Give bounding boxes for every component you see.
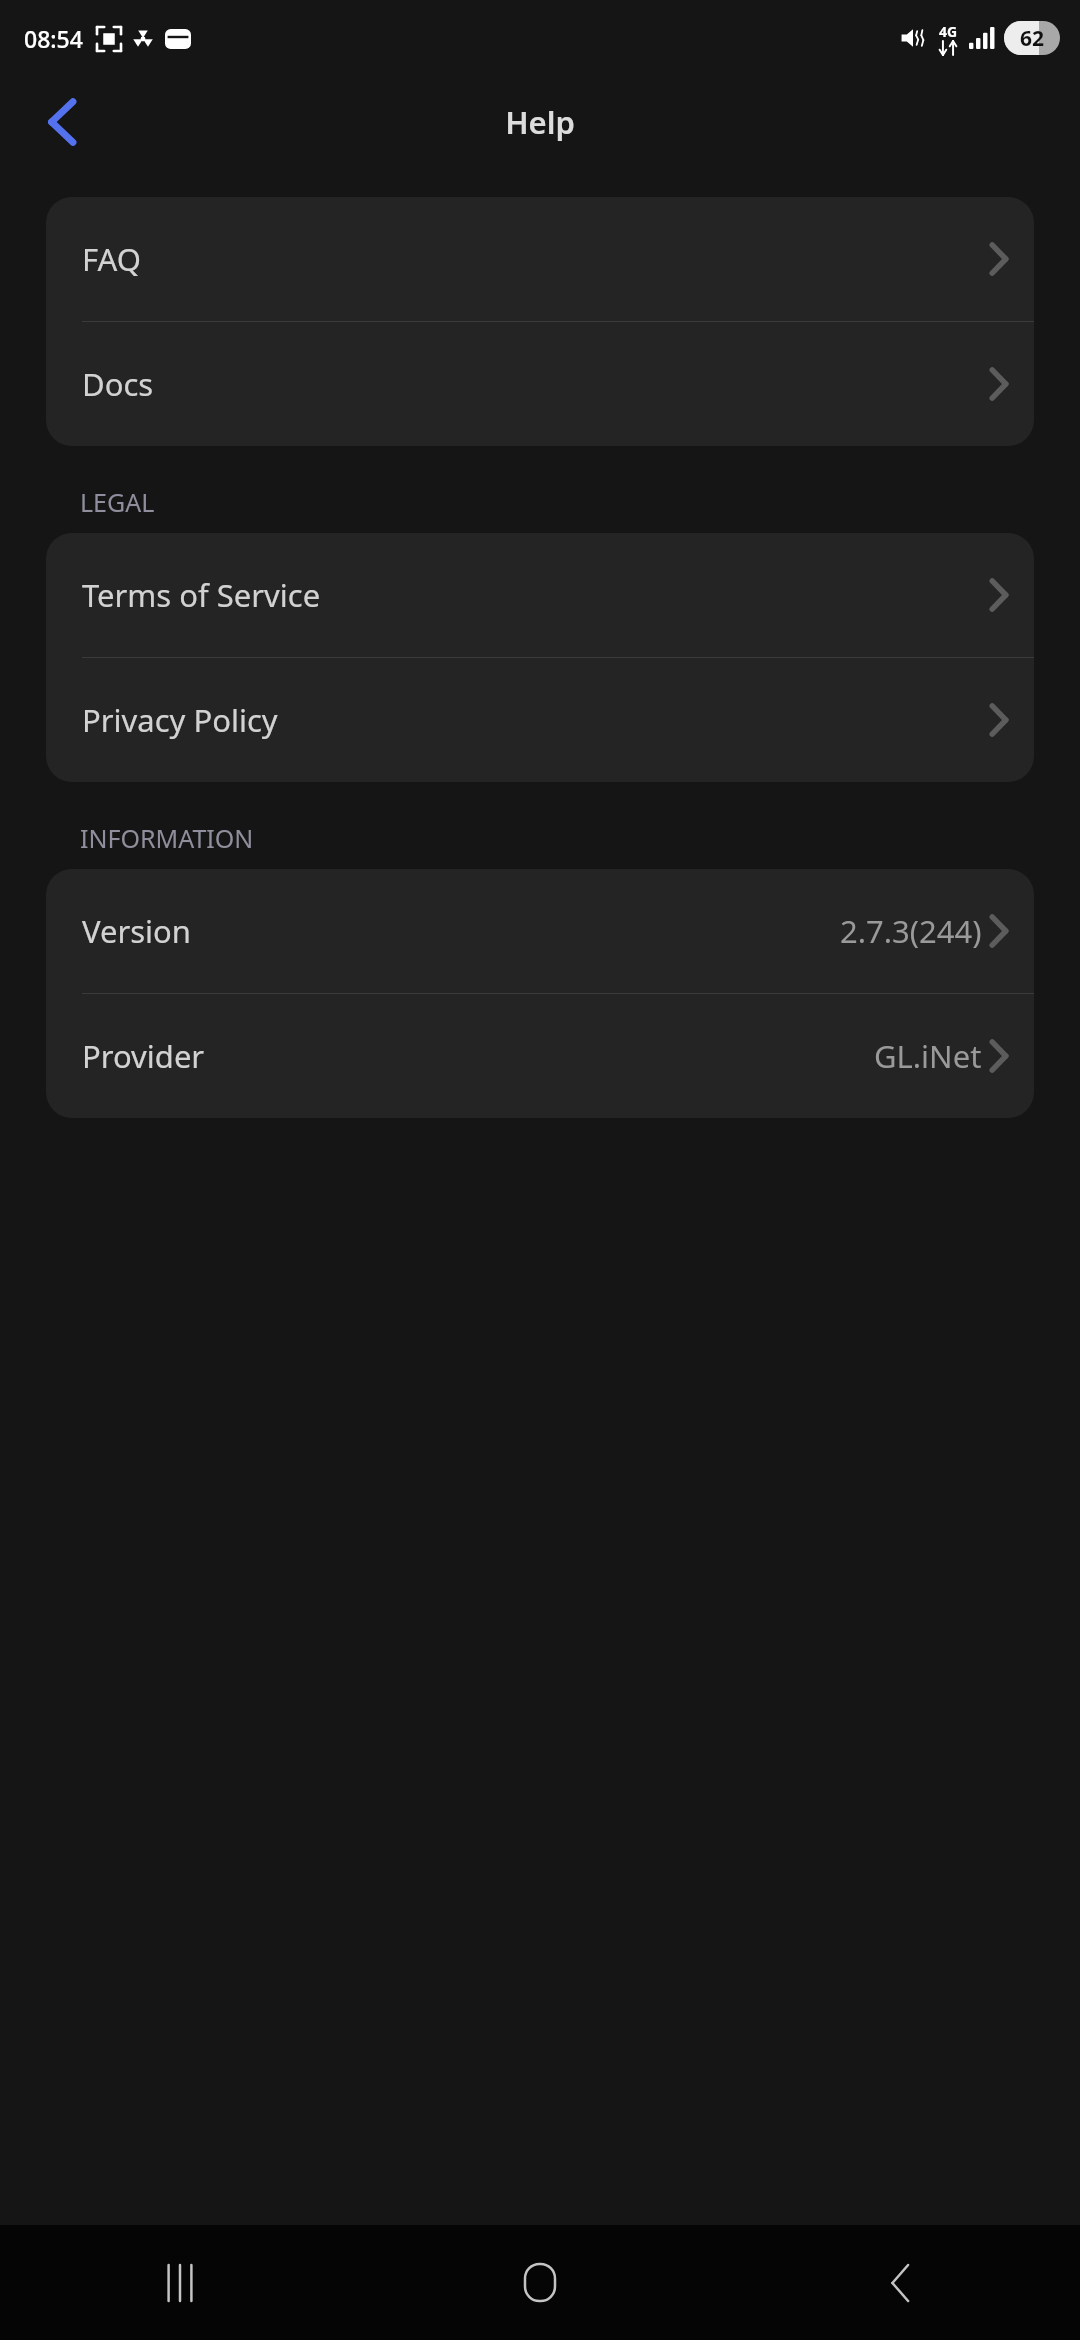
staticText: Version	[82, 910, 192, 952]
staticText: 08:54	[24, 23, 83, 54]
staticText: Provider	[82, 1035, 205, 1077]
staticText: Privacy Policy	[82, 699, 278, 741]
staticText: INFORMATION	[80, 821, 1080, 855]
staticText: GL.iNet	[874, 1035, 982, 1077]
button[interactable]: FAQ	[46, 197, 1034, 321]
staticText: 2.7.3(244)	[840, 910, 982, 952]
button[interactable]: Provider	[46, 994, 1034, 1118]
staticText: FAQ	[82, 238, 141, 280]
button[interactable]: Back	[720, 2225, 1080, 2340]
button[interactable]: Privacy Policy	[46, 658, 1034, 782]
button[interactable]: Back	[34, 94, 90, 150]
staticText: LEGAL	[80, 485, 1080, 519]
button[interactable]: Version	[46, 869, 1034, 993]
staticText: Docs	[82, 363, 154, 405]
staticText: Help	[505, 101, 575, 143]
staticText: 4G	[939, 22, 958, 41]
button[interactable]: Recents	[0, 2225, 360, 2340]
staticText: 62	[1020, 24, 1045, 53]
button[interactable]: Home	[360, 2225, 720, 2340]
staticText: Terms of Service	[82, 574, 321, 616]
button[interactable]: Docs	[46, 322, 1034, 446]
button[interactable]: Terms of Service	[46, 533, 1034, 657]
